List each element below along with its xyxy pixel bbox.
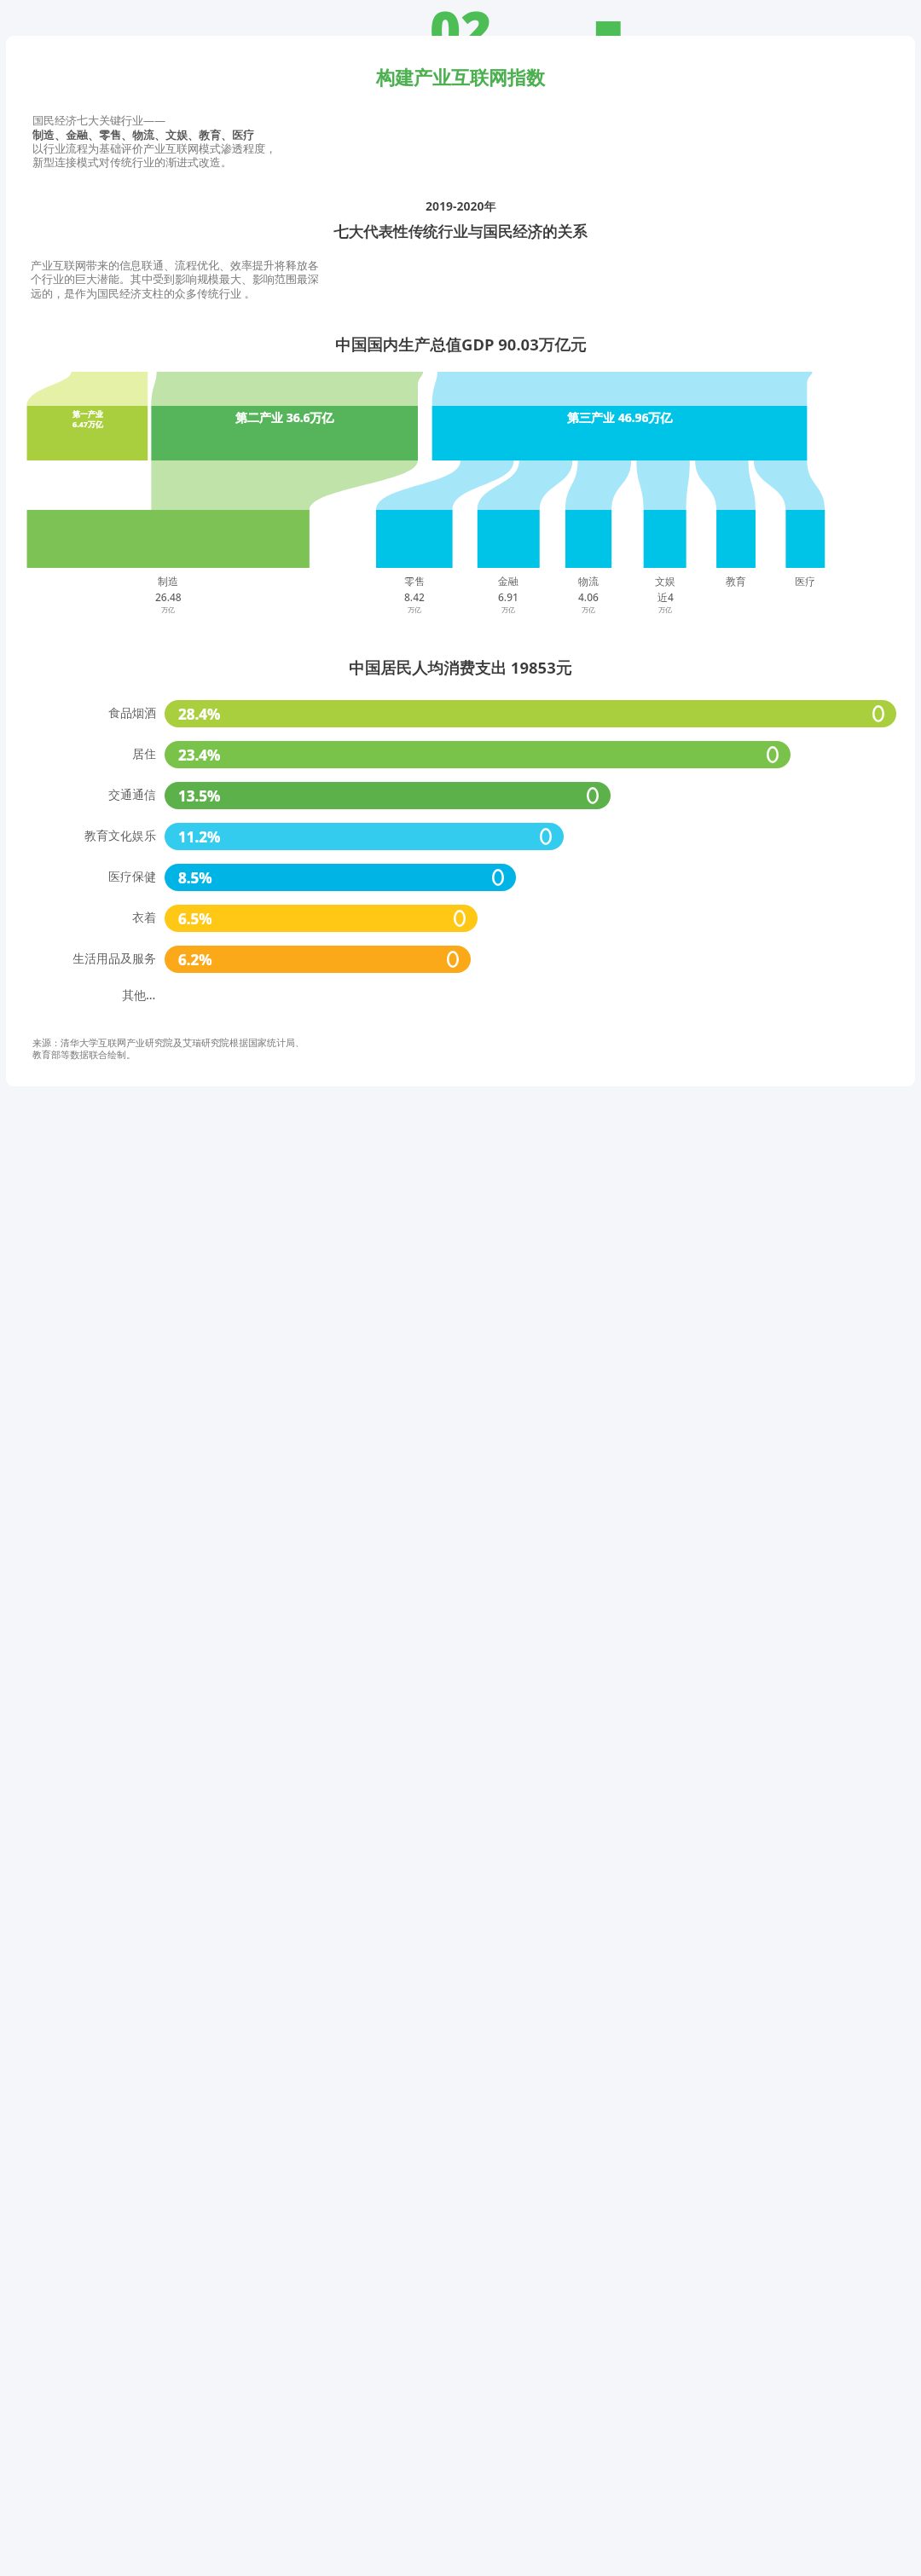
button[interactable]: 第一产业 — [27, 409, 148, 429]
staticText: 8.42 — [404, 590, 425, 604]
staticText: 制造、金融、零售、物流、文娱、教育、医疗 — [32, 128, 254, 142]
button[interactable]: 制造 — [142, 575, 194, 614]
staticText: 教育部等数据联合绘制。 — [32, 1049, 136, 1061]
staticText: 教育文化娱乐 — [84, 829, 156, 844]
staticText: 零售 — [404, 575, 425, 588]
staticText: 居住 — [132, 747, 156, 762]
staticText: 医疗 — [795, 575, 815, 588]
button[interactable]: 文娱 — [640, 575, 691, 614]
staticText: 万亿 — [408, 605, 421, 614]
staticText: 新型连接模式对传统行业的渐进式改造。 — [32, 155, 232, 169]
staticText: 6.91 — [498, 590, 518, 604]
staticText: 11.2% — [178, 827, 221, 847]
staticText: 28.4% — [178, 704, 221, 724]
staticText: 医疗保健 — [108, 870, 156, 885]
button[interactable]: 生活用品及服务 — [21, 946, 896, 973]
button[interactable]: 医疗保健 — [21, 864, 896, 891]
staticText: 6.5% — [178, 909, 212, 929]
staticText: 国民经济七大关键行业—— — [32, 113, 166, 128]
staticText: 文娱 — [655, 575, 675, 588]
button[interactable]: 交通通信 — [21, 782, 896, 809]
staticText: 金融 — [498, 575, 518, 588]
staticText: 万亿 — [161, 605, 175, 614]
staticText: 第三产业 46.96万亿 — [567, 409, 673, 425]
staticText: 第一产业 — [72, 409, 103, 419]
staticText: 生活用品及服务 — [72, 952, 156, 967]
staticText: 02 — [430, 0, 492, 65]
staticText: 其他... — [122, 987, 156, 1003]
staticText: 食品烟酒 — [108, 706, 156, 721]
staticText: 教育 — [726, 575, 746, 588]
staticText: 近4 — [657, 590, 674, 604]
button[interactable]: 医疗 — [779, 575, 831, 588]
staticText: 物流 — [578, 575, 599, 588]
button[interactable]: 居住 — [21, 741, 896, 768]
staticText: 2019-2020年 — [426, 198, 496, 214]
button[interactable]: 衣着 — [21, 905, 896, 932]
button[interactable]: 第二产业 36.6万亿 — [151, 409, 418, 425]
button[interactable]: 金融 — [483, 575, 534, 614]
staticText: 万亿 — [658, 605, 672, 614]
staticText: 远的，是作为国民经济支柱的众多传统行业 。 — [31, 286, 256, 301]
staticText: 8.5% — [178, 868, 212, 888]
button[interactable]: 物流 — [563, 575, 614, 614]
staticText: 万亿 — [582, 605, 595, 614]
staticText: 6.2% — [178, 950, 212, 970]
staticText: 13.5% — [178, 786, 221, 806]
staticText: 第二产业 36.6万亿 — [235, 409, 334, 425]
staticText: 4.06 — [578, 590, 599, 604]
staticText: 衣着 — [132, 911, 156, 926]
staticText: 交通通信 — [108, 788, 156, 803]
staticText: 23.4% — [178, 745, 221, 765]
staticText: 制造 — [158, 575, 178, 588]
staticText: 个行业的巨大潜能。其中受到影响规模最大、影响范围最深 — [31, 272, 319, 286]
button[interactable]: 教育 — [710, 575, 762, 588]
staticText: 中国居民人均消费支出 19853元 — [349, 657, 572, 678]
button[interactable]: 第三产业 46.96万亿 — [432, 409, 808, 425]
button[interactable]: 食品烟酒 — [21, 700, 896, 727]
staticText: 万亿 — [501, 605, 515, 614]
button[interactable]: 零售 — [389, 575, 440, 614]
staticText: 26.48 — [155, 590, 182, 604]
staticText: 中国国内生产总值GDP 90.03万亿元 — [335, 333, 587, 355]
button[interactable]: 教育文化娱乐 — [21, 823, 896, 850]
staticText: 来源：清华大学互联网产业研究院及艾瑞研究院根据国家统计局、 — [32, 1037, 304, 1049]
staticText: 6.47万亿 — [72, 419, 103, 429]
staticText: 产业互联网带来的信息联通、流程优化、效率提升将释放各 — [31, 258, 319, 272]
staticText: 构建产业互联网指数 — [376, 67, 545, 90]
staticText: 七大代表性传统行业与国民经济的关系 — [333, 223, 588, 241]
staticText: 以行业流程为基础评价产业互联网模式渗透程度， — [32, 142, 276, 155]
